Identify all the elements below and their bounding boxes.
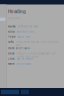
button[interactable]: Selected section: [0, 17, 5, 21]
staticText: long descriptive line of body text: [15, 40, 58, 47]
staticText: Info: [8, 40, 14, 44]
staticText: tap to open: [16, 57, 33, 60]
button[interactable]: Kind: [8, 30, 64, 35]
button[interactable]: Name: [8, 25, 64, 30]
staticText: another line: [16, 30, 34, 33]
staticText: Type: [8, 35, 16, 38]
button[interactable]: Type: [8, 35, 64, 40]
staticText: secondary: [16, 62, 30, 65]
staticText: a much longer paragraph of detail text h…: [16, 52, 55, 58]
button[interactable]: Item: [8, 47, 64, 52]
staticText: Kind: [8, 30, 15, 33]
staticText: Link: [8, 57, 15, 60]
staticText: value text: [17, 35, 30, 38]
staticText: Desc: [8, 52, 15, 55]
staticText: Item: [8, 47, 14, 50]
button[interactable]: Info: [8, 40, 64, 46]
button[interactable]: Desc: [8, 52, 64, 57]
button[interactable]: Link: [8, 57, 64, 62]
staticText: reference text: [17, 25, 38, 28]
staticText: short label: [15, 47, 30, 50]
staticText: Heading: [8, 9, 26, 14]
button[interactable]: More: [8, 62, 64, 67]
staticText: Name: [8, 25, 16, 28]
staticText: More: [8, 62, 15, 65]
